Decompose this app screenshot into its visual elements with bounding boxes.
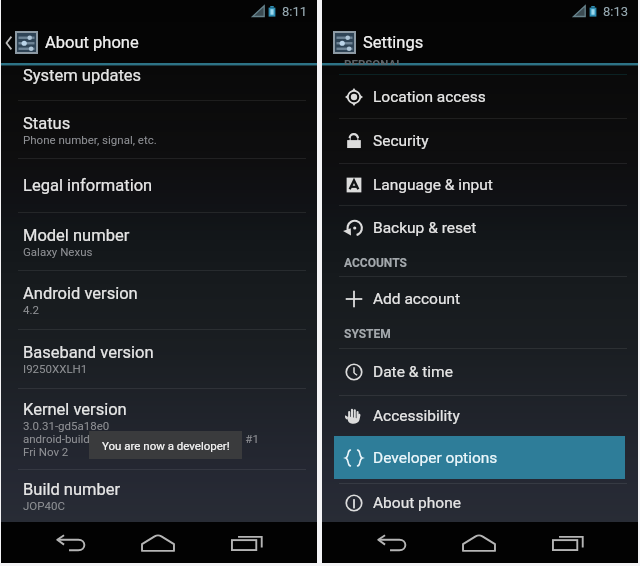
staticText: System updates xyxy=(23,66,142,85)
staticText: Settings xyxy=(363,33,424,52)
button[interactable]: Recent apps xyxy=(227,522,267,563)
staticText: JOP40C xyxy=(23,499,65,512)
button[interactable]: Home xyxy=(459,522,499,563)
button[interactable]: Accessibility xyxy=(322,396,638,436)
staticText: PERSONAL xyxy=(344,57,403,65)
staticText: Status xyxy=(23,114,71,133)
staticText: About phone xyxy=(45,33,139,52)
staticText: Add account xyxy=(373,290,461,308)
button[interactable]: Kernel version xyxy=(1,389,317,469)
staticText: I9250XXLH1 xyxy=(23,362,88,375)
button[interactable]: Location access xyxy=(322,75,638,118)
staticText: Fri Nov 2 xyxy=(23,445,69,458)
staticText: Kernel version xyxy=(23,400,127,419)
button[interactable]: Recent apps xyxy=(548,522,588,563)
button[interactable]: Back xyxy=(51,522,91,563)
staticText: You are now a developer! xyxy=(102,439,230,452)
staticText: Backup & reset xyxy=(373,219,477,237)
staticText: android-build@vpbs1.mtv.corp.google.com … xyxy=(23,432,259,445)
staticText: 8:13 xyxy=(603,4,629,19)
staticText: 8:11 xyxy=(282,4,308,19)
button[interactable]: Date & time xyxy=(322,349,638,395)
staticText: Baseband version xyxy=(23,343,154,362)
button[interactable]: Legal information xyxy=(1,159,317,212)
button[interactable]: System updates xyxy=(1,66,317,100)
staticText: Date & time xyxy=(373,363,453,381)
button[interactable]: Baseband version xyxy=(1,330,317,388)
button[interactable]: Build number xyxy=(1,470,317,522)
button[interactable]: Settings xyxy=(322,22,638,63)
staticText: Build number xyxy=(23,480,121,499)
button[interactable]: Model number xyxy=(1,213,317,270)
button[interactable]: Android version xyxy=(1,271,317,329)
staticText: Language & input xyxy=(373,176,493,194)
staticText: ACCOUNTS xyxy=(344,256,407,270)
staticText: Accessibility xyxy=(373,407,460,425)
button[interactable]: Language & input xyxy=(322,164,638,205)
button[interactable]: Security xyxy=(322,119,638,163)
button[interactable]: About phone xyxy=(1,22,317,63)
staticText: 3.0.31-gd5a18e0 xyxy=(23,419,110,432)
button[interactable]: Developer options xyxy=(334,436,625,479)
staticText: Location access xyxy=(373,88,486,106)
button[interactable]: Backup & reset xyxy=(322,206,638,249)
button[interactable]: Home xyxy=(138,522,178,563)
staticText: Legal information xyxy=(23,176,153,195)
button[interactable]: About phone xyxy=(322,484,638,522)
staticText: About phone xyxy=(373,494,461,512)
staticText: Phone number, signal, etc. xyxy=(23,133,157,146)
staticText: SYSTEM xyxy=(344,327,391,341)
staticText: Developer options xyxy=(373,449,498,467)
staticText: Galaxy Nexus xyxy=(23,245,93,258)
staticText: Android version xyxy=(23,284,138,303)
staticText: Model number xyxy=(23,226,130,245)
button[interactable]: Add account xyxy=(322,277,638,320)
button[interactable]: Status xyxy=(1,101,317,158)
staticText: Security xyxy=(373,132,429,150)
button[interactable]: Back xyxy=(372,522,412,563)
staticText: 4.2 xyxy=(23,303,39,316)
